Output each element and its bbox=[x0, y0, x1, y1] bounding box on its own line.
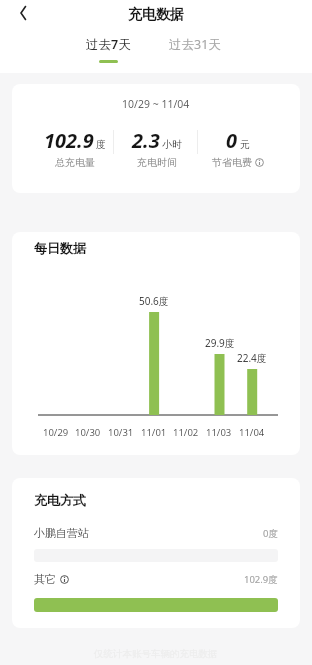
staticText: 11/03 bbox=[206, 426, 232, 439]
staticText: 11/01 bbox=[141, 426, 167, 439]
staticText: 29.9度 bbox=[205, 336, 235, 350]
staticText: 10/29 ~ 11/04 bbox=[122, 97, 190, 111]
staticText: 10/29 bbox=[43, 426, 69, 439]
staticText: 其它 bbox=[34, 572, 56, 586]
staticText: 11/04 bbox=[239, 426, 265, 439]
staticText: 度 bbox=[96, 138, 106, 151]
staticText: 50.6度 bbox=[139, 294, 169, 308]
staticText: 总充电量 bbox=[55, 156, 95, 169]
staticText: 11/02 bbox=[173, 426, 199, 439]
button[interactable] bbox=[12, 1, 35, 24]
staticText: 充电数据 bbox=[128, 6, 184, 24]
staticText: 2.3 bbox=[132, 127, 160, 154]
staticText: 102.9度 bbox=[244, 573, 278, 586]
staticText: 0度 bbox=[263, 527, 278, 540]
staticText: 22.4度 bbox=[237, 351, 267, 365]
staticText: 仅统计本账号车辆的充电数据 bbox=[94, 648, 218, 660]
staticText: 过去7天 bbox=[86, 36, 131, 53]
staticText: 充电时间 bbox=[137, 156, 177, 169]
staticText: 小时 bbox=[162, 138, 182, 151]
staticText: 元 bbox=[240, 138, 250, 151]
staticText: 102.9 bbox=[44, 127, 94, 154]
staticText: 10/30 bbox=[75, 426, 101, 439]
staticText: 小鹏自营站 bbox=[34, 526, 89, 540]
staticText: 每日数据 bbox=[34, 240, 86, 256]
button[interactable]: 过去31天 bbox=[165, 36, 225, 66]
staticText: 0 bbox=[226, 127, 238, 154]
staticText: 充电方式 bbox=[34, 492, 86, 508]
staticText: 过去31天 bbox=[169, 36, 221, 53]
button[interactable]: 过去7天 bbox=[78, 36, 138, 70]
staticText: 10/31 bbox=[108, 426, 134, 439]
staticText: 节省电费 bbox=[212, 156, 252, 169]
